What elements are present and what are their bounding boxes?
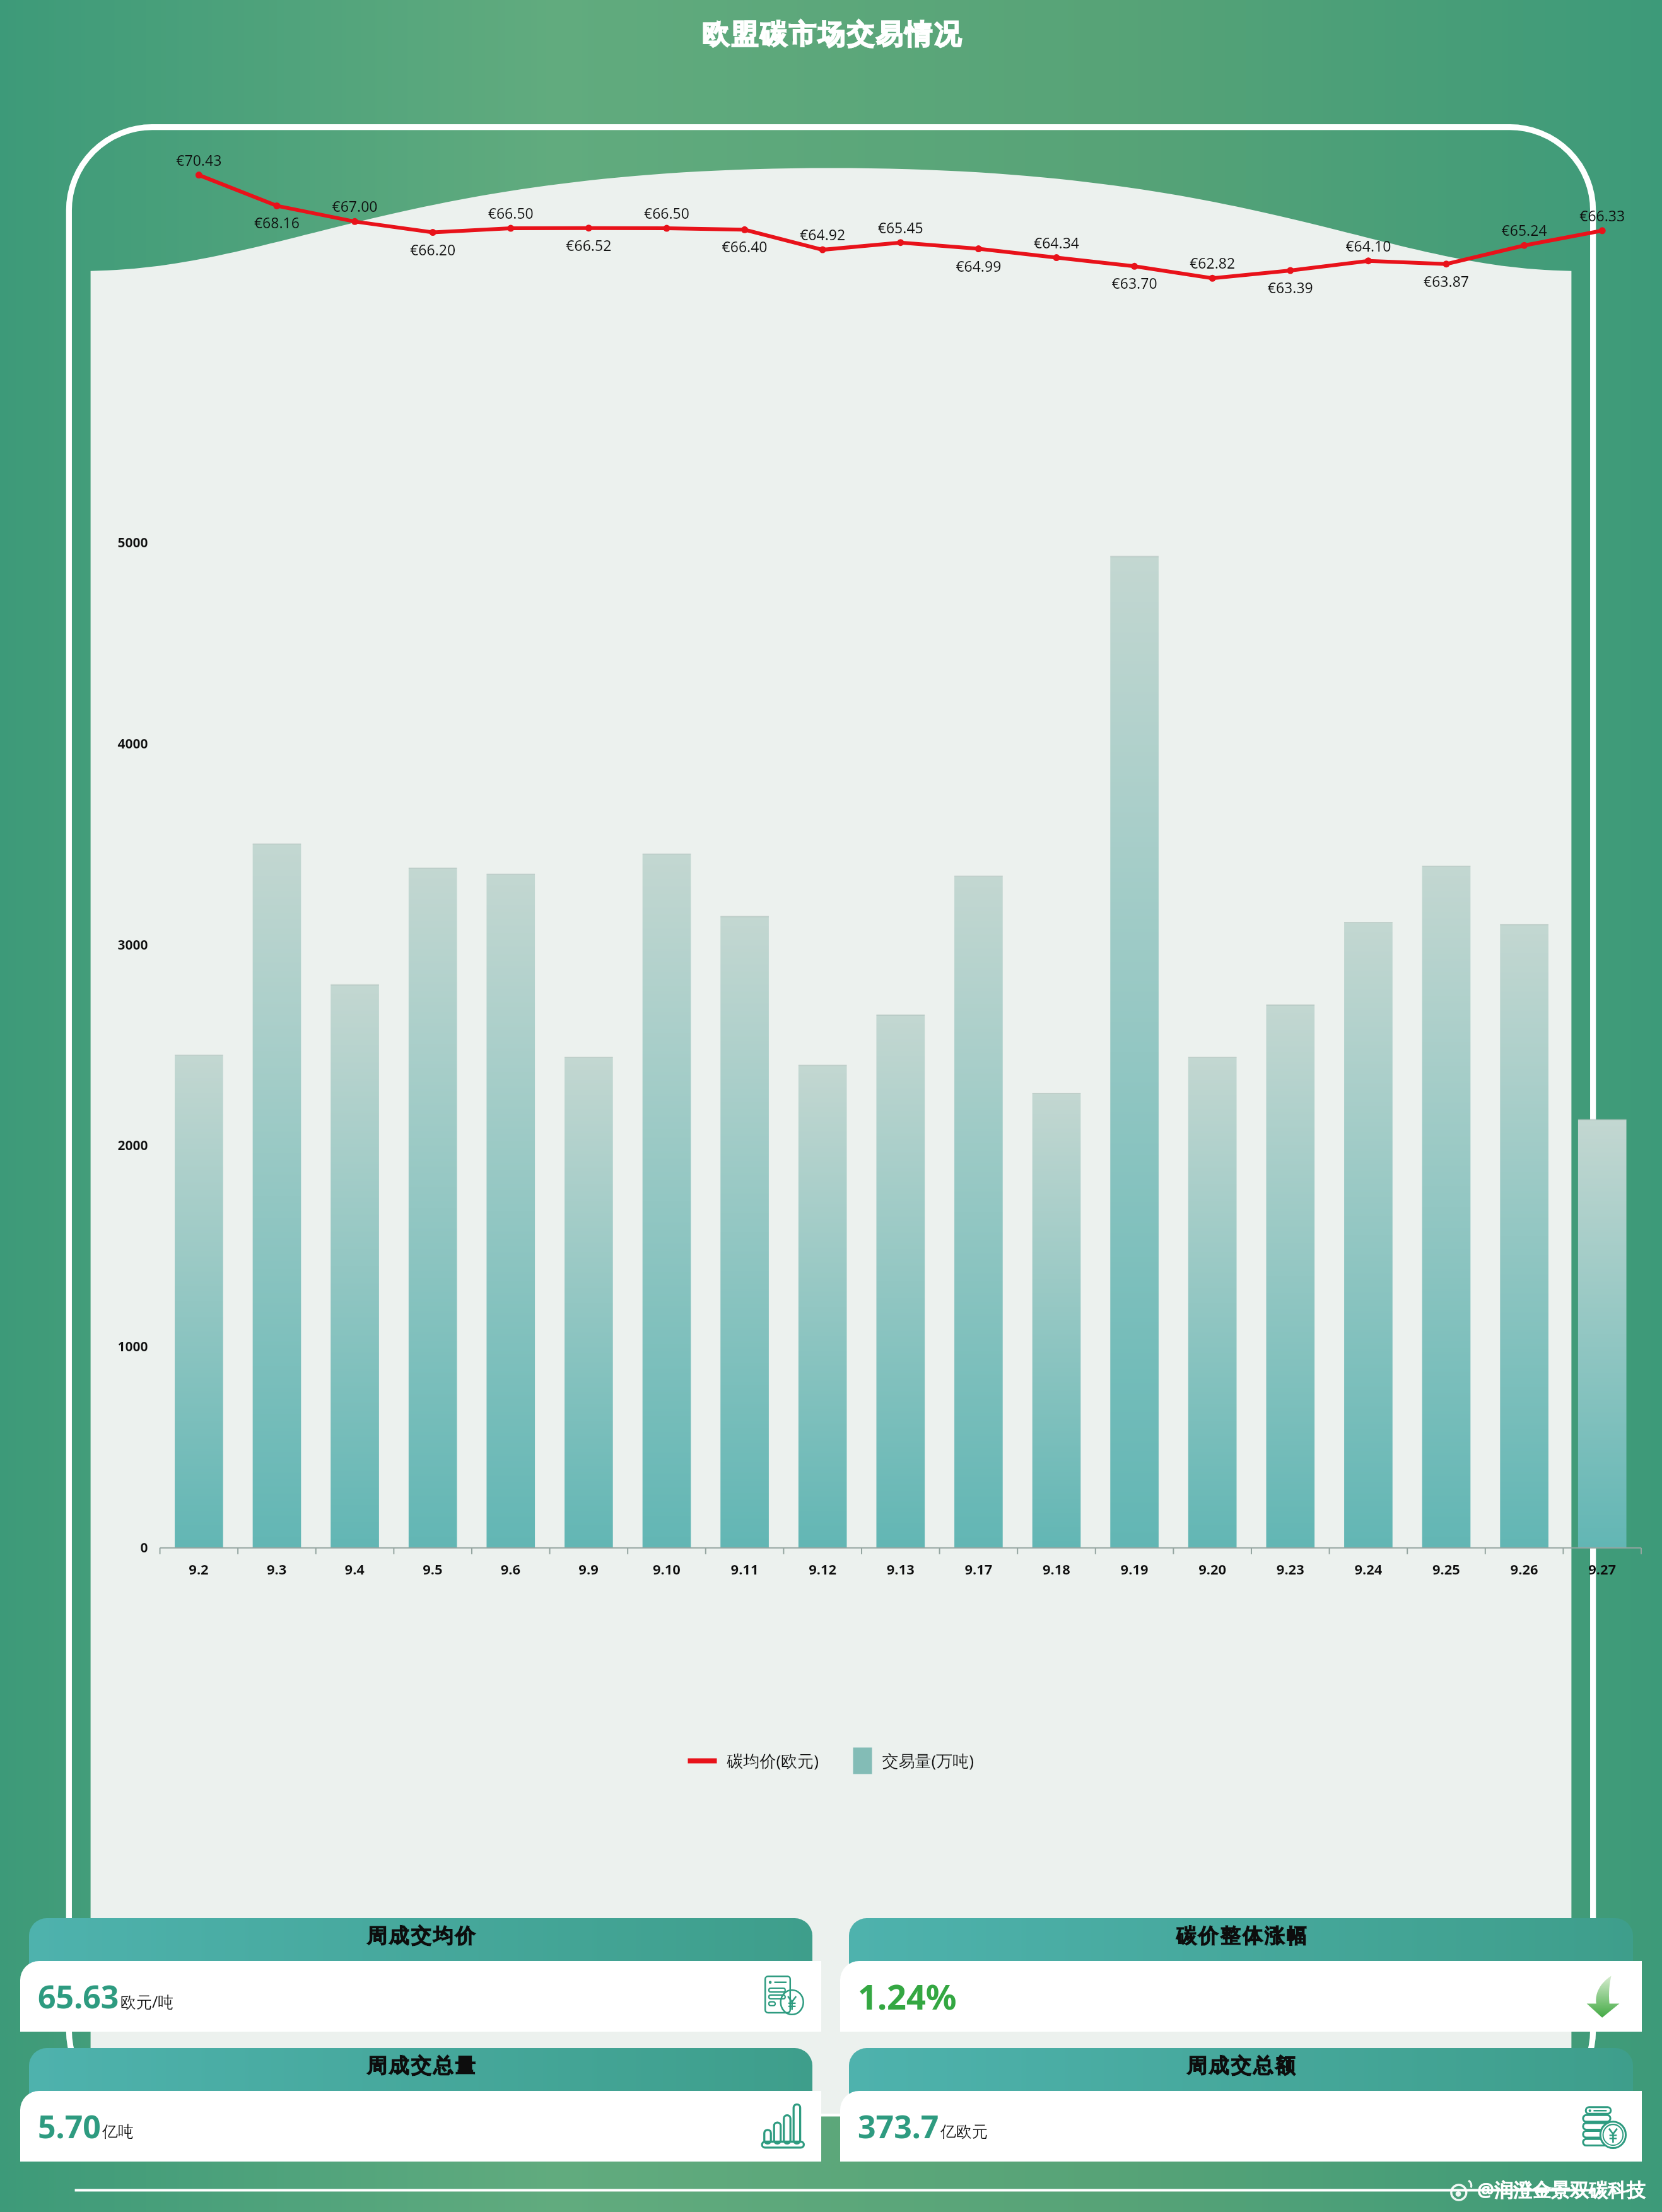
other: Total amount bbox=[1581, 2104, 1627, 2149]
staticText: 欧元/吨 bbox=[120, 1991, 174, 2012]
button[interactable]: 碳价整体涨幅 bbox=[840, 1918, 1642, 2032]
button[interactable]: 周成交总额 bbox=[840, 2048, 1642, 2162]
staticText: 373.7 bbox=[858, 2105, 939, 2148]
staticText: 亿欧元 bbox=[940, 2122, 988, 2141]
staticText: 65.63 bbox=[38, 1975, 119, 2018]
staticText: 周成交总量 bbox=[366, 2053, 476, 2078]
staticText: 碳价整体涨幅 bbox=[1175, 1923, 1308, 1948]
staticText: 周成交均价 bbox=[366, 1923, 476, 1948]
staticText: 周成交总额 bbox=[1186, 2053, 1296, 2078]
other: Weibo bbox=[1448, 2177, 1473, 2203]
staticText: 1.24% bbox=[858, 1973, 957, 2020]
other: Down arrow bbox=[1581, 1974, 1627, 2019]
button[interactable]: 周成交总量 bbox=[20, 2048, 821, 2162]
staticText: 5.70 bbox=[38, 2105, 101, 2148]
button[interactable]: 周成交均价 bbox=[20, 1918, 821, 2032]
button[interactable]: Weibo bbox=[1448, 2177, 1646, 2203]
staticText: @润澄金景双碳科技 bbox=[1477, 2177, 1646, 2203]
other: Average price bbox=[761, 1974, 806, 2019]
staticText: 欧盟碳市场交易情况 bbox=[701, 18, 962, 52]
staticText: 亿吨 bbox=[102, 2122, 134, 2141]
other: Volume bbox=[761, 2104, 806, 2149]
